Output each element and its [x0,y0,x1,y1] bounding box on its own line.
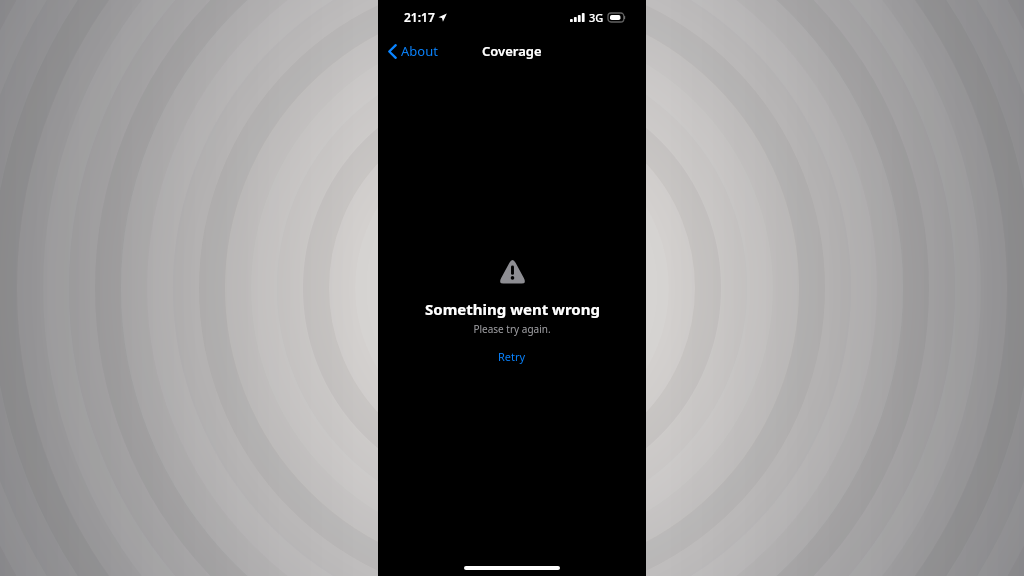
staticText: 21:17 [404,9,435,25]
other: Warning [497,256,528,285]
staticText: About [401,42,438,60]
button[interactable]: Retry [484,346,540,367]
staticText: Retry [498,349,526,364]
staticText: Coverage [482,42,542,60]
staticText: Please try again. [473,322,551,336]
staticText: 3G [589,10,604,25]
staticText: Something went wrong [425,299,600,319]
button[interactable]: About [384,38,442,64]
